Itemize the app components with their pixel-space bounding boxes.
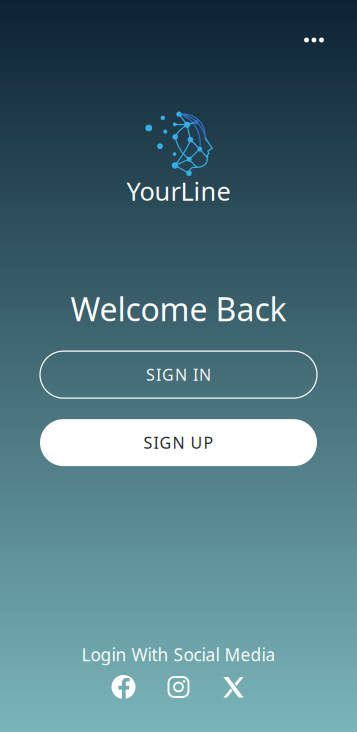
staticText: SIGN UP [143, 432, 213, 453]
button[interactable]: SIGN IN [40, 351, 317, 398]
button[interactable]: X [221, 675, 245, 699]
staticText: Login With Social Media [81, 643, 275, 666]
button[interactable]: Facebook [111, 675, 135, 699]
staticText: SIGN IN [146, 364, 211, 385]
staticText: YourLine [126, 174, 230, 208]
button[interactable]: More options [292, 20, 336, 60]
button[interactable]: SIGN UP [40, 419, 317, 466]
button[interactable]: Instagram [166, 675, 190, 699]
staticText: Welcome Back [70, 288, 286, 330]
